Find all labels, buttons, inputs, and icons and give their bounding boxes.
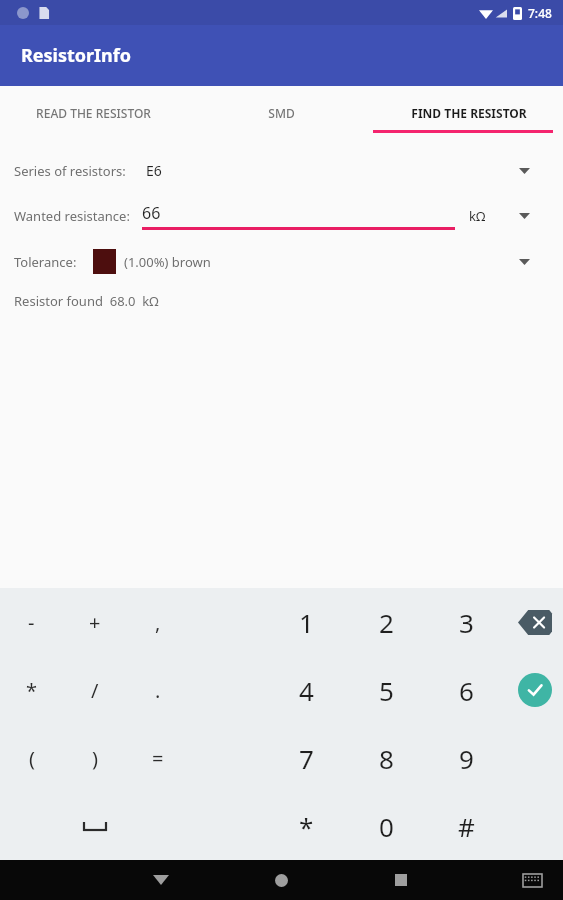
button[interactable]: 5: [346, 656, 426, 724]
staticText: E6: [146, 161, 162, 180]
staticText: =: [152, 745, 164, 772]
button[interactable]: Back: [140, 860, 182, 900]
staticText: 2: [379, 605, 394, 640]
button[interactable]: 66: [142, 193, 455, 239]
button[interactable]: .: [126, 656, 189, 724]
button[interactable]: ,: [126, 588, 189, 656]
staticText: #: [458, 809, 475, 844]
staticText: SMD: [268, 105, 295, 121]
staticText: +: [89, 609, 101, 636]
staticText: ): [92, 745, 98, 772]
staticText: ResistorInfo: [21, 43, 132, 68]
staticText: 66: [142, 202, 161, 224]
button[interactable]: 8: [346, 724, 426, 792]
staticText: Resistor found 68.0 kΩ: [14, 292, 159, 310]
button[interactable]: Open dropdown: [513, 160, 535, 182]
button[interactable]: Open dropdown: [513, 251, 535, 273]
staticText: -: [28, 609, 35, 636]
staticText: 4: [299, 673, 314, 708]
button[interactable]: [63, 792, 126, 860]
button[interactable]: 7: [266, 724, 346, 792]
button[interactable]: Tolerance:: [0, 239, 563, 284]
button[interactable]: 4: [266, 656, 346, 724]
staticText: 6: [459, 673, 474, 708]
staticText: Wanted resistance:: [14, 207, 130, 225]
button[interactable]: Recent apps: [380, 860, 422, 900]
staticText: 7: [299, 741, 314, 776]
staticText: ,: [155, 609, 161, 636]
staticText: *: [26, 677, 38, 704]
button[interactable]: READ THE RESISTOR: [0, 86, 187, 148]
button[interactable]: 6: [426, 656, 506, 724]
button[interactable]: -: [0, 588, 63, 656]
staticText: kΩ: [469, 207, 486, 225]
button[interactable]: ): [63, 724, 126, 792]
staticText: READ THE RESISTOR: [36, 105, 151, 121]
staticText: /: [91, 677, 99, 704]
staticText: 3: [459, 605, 474, 640]
button[interactable]: Home: [260, 860, 302, 900]
button[interactable]: SMD: [187, 86, 375, 148]
button[interactable]: 0: [346, 792, 426, 860]
staticText: 7:48: [528, 5, 552, 21]
staticText: 0: [379, 809, 394, 844]
staticText: (1.00%) brown: [124, 253, 211, 271]
staticText: 5: [379, 673, 394, 708]
button[interactable]: 1: [266, 588, 346, 656]
button[interactable]: Open dropdown: [513, 205, 535, 227]
staticText: (: [29, 745, 35, 772]
staticText: *: [299, 809, 314, 844]
button[interactable]: Backspace: [518, 610, 552, 635]
button[interactable]: #: [426, 792, 506, 860]
staticText: .: [155, 677, 161, 704]
button[interactable]: /: [63, 656, 126, 724]
button[interactable]: (: [0, 724, 63, 792]
staticText: 9: [459, 741, 474, 776]
button[interactable]: Switch keyboard: [511, 860, 553, 900]
button[interactable]: 9: [426, 724, 506, 792]
staticText: FIND THE RESISTOR: [411, 105, 527, 121]
button[interactable]: Series of resistors:: [0, 148, 563, 193]
staticText: 1: [299, 605, 314, 640]
button[interactable]: Confirm: [518, 673, 552, 707]
button[interactable]: *: [0, 656, 63, 724]
staticText: Tolerance:: [14, 253, 77, 271]
button[interactable]: 3: [426, 588, 506, 656]
button[interactable]: +: [63, 588, 126, 656]
staticText: 8: [379, 741, 394, 776]
button[interactable]: *: [266, 792, 346, 860]
button[interactable]: FIND THE RESISTOR: [375, 86, 563, 148]
button[interactable]: 2: [346, 588, 426, 656]
button[interactable]: =: [126, 724, 189, 792]
staticText: Series of resistors:: [14, 162, 126, 180]
